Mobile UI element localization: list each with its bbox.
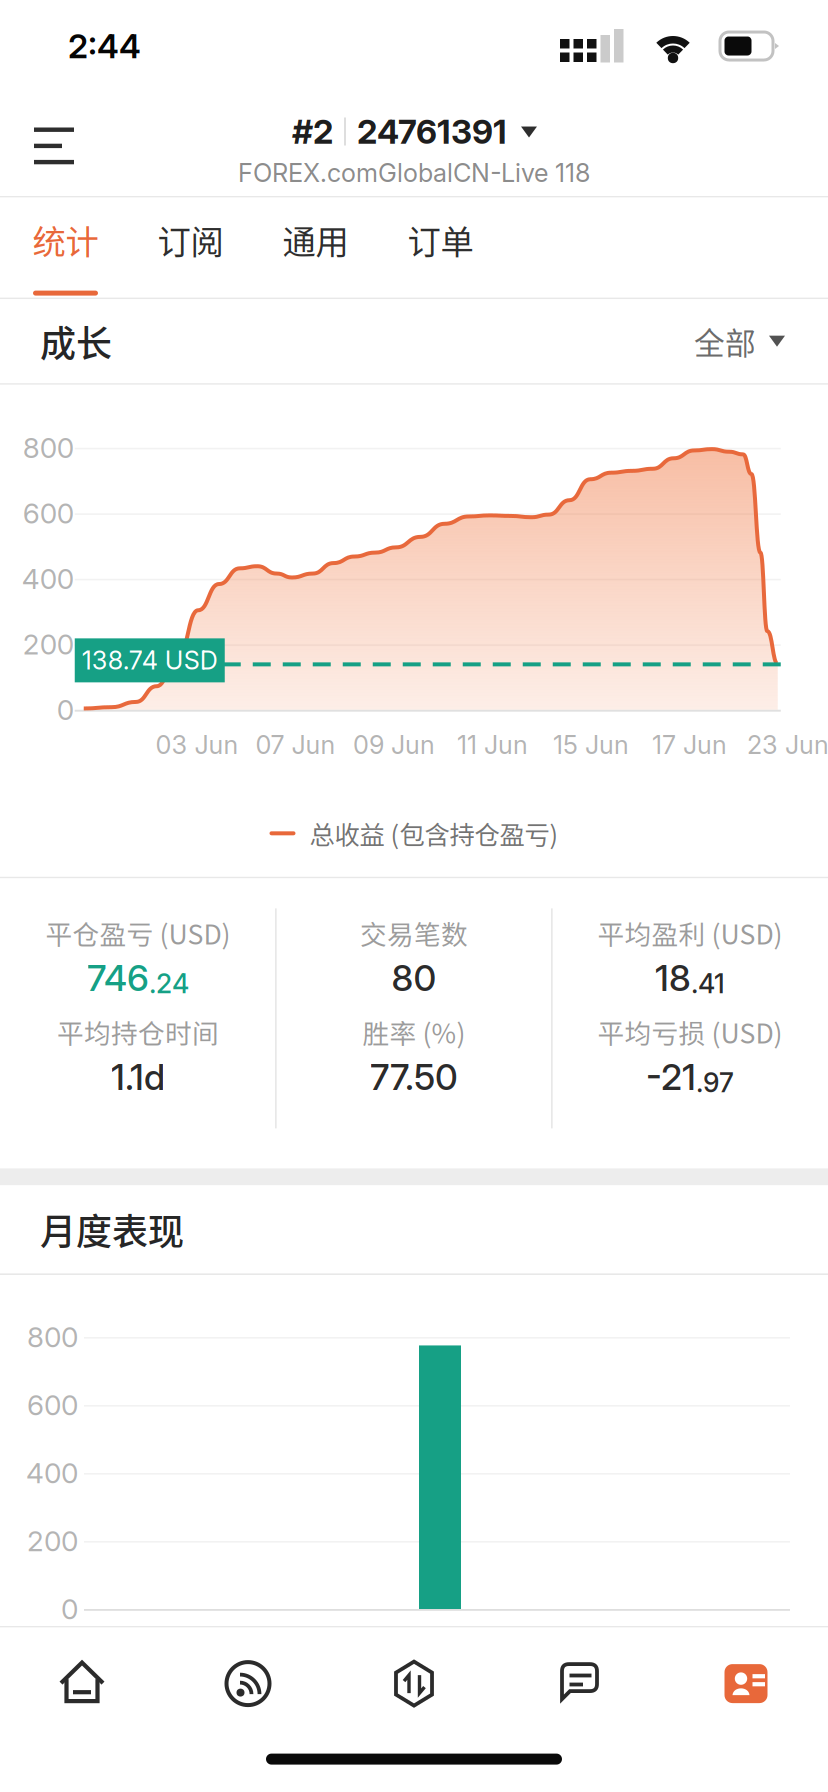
staticText: 通用 bbox=[282, 215, 348, 264]
staticText: 1.1d bbox=[111, 1055, 165, 1099]
staticText: 订单 bbox=[407, 215, 473, 264]
button[interactable]: 订阅 bbox=[128, 198, 253, 298]
staticText: 平均亏损 (USD) bbox=[597, 1013, 782, 1051]
staticText: 平仓盈亏 (USD) bbox=[45, 914, 230, 952]
staticText: 0 bbox=[61, 1592, 78, 1626]
staticText: 77.50 bbox=[370, 1055, 458, 1099]
staticText: 平均盈利 (USD) bbox=[597, 914, 782, 952]
staticText: 24761391 bbox=[357, 111, 507, 152]
staticText: 18 bbox=[655, 956, 691, 1000]
staticText: 600 bbox=[27, 1388, 78, 1422]
staticText: 平均持仓时间 bbox=[57, 1013, 219, 1051]
button[interactable]: 全部 bbox=[694, 301, 784, 381]
staticText: 07 Jun bbox=[255, 729, 335, 760]
staticText: 17 Jun bbox=[652, 729, 727, 760]
button[interactable]: Signals bbox=[165, 1646, 331, 1722]
staticText: 2:44 bbox=[68, 26, 141, 66]
staticText: 03 Jun bbox=[155, 729, 238, 760]
button[interactable]: Home bbox=[0, 1646, 165, 1722]
button[interactable]: 通用 bbox=[253, 198, 378, 298]
staticText: .41 bbox=[691, 967, 725, 1000]
staticText: 总收益 (包含持仓盈亏) bbox=[309, 815, 558, 852]
staticText: 成长 bbox=[40, 315, 112, 367]
staticText: 23 Jun bbox=[747, 729, 828, 760]
staticText: 400 bbox=[22, 562, 74, 596]
staticText: #2 bbox=[292, 111, 333, 152]
staticText: .97 bbox=[696, 1066, 734, 1099]
staticText: 400 bbox=[26, 1456, 78, 1490]
staticText: 11 Jun bbox=[457, 729, 528, 760]
staticText: 746 bbox=[87, 956, 149, 1000]
staticText: 200 bbox=[27, 1524, 78, 1558]
button[interactable]: Menu bbox=[0, 96, 104, 191]
staticText: 600 bbox=[23, 496, 74, 530]
staticText: 138.74 USD bbox=[82, 645, 218, 676]
staticText: 交易笔数 bbox=[360, 914, 468, 952]
staticText: 800 bbox=[27, 1320, 78, 1354]
staticText: 0 bbox=[57, 693, 74, 727]
staticText: 订阅 bbox=[157, 215, 223, 264]
staticText: 800 bbox=[23, 431, 74, 465]
staticText: .24 bbox=[149, 967, 189, 1000]
staticText: 80 bbox=[391, 956, 436, 1000]
staticText: 200 bbox=[23, 627, 74, 661]
button[interactable]: #2 bbox=[292, 108, 536, 154]
button[interactable]: Messages bbox=[497, 1646, 663, 1722]
button[interactable]: 统计 bbox=[3, 198, 128, 298]
staticText: 15 Jun bbox=[553, 729, 629, 760]
staticText: 胜率 (%) bbox=[362, 1013, 465, 1051]
button[interactable]: Trade bbox=[331, 1646, 497, 1722]
staticText: 全部 bbox=[694, 319, 756, 363]
staticText: 09 Jun bbox=[353, 729, 435, 760]
staticText: FOREX.comGlobalCN-Live 118 bbox=[238, 157, 590, 188]
staticText: -21 bbox=[646, 1055, 696, 1099]
staticText: 统计 bbox=[32, 215, 98, 264]
button[interactable]: Accounts bbox=[663, 1646, 828, 1722]
button[interactable]: 订单 bbox=[378, 198, 503, 298]
staticText: 月度表现 bbox=[40, 1203, 184, 1255]
